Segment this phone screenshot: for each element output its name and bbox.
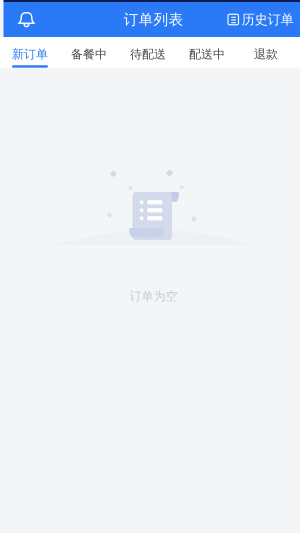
staticText: 备餐中 (71, 47, 107, 62)
button[interactable]: 备餐中 (71, 37, 107, 68)
staticText: 退款 (254, 47, 278, 62)
staticText: 订单为空 (129, 289, 177, 304)
staticText: 历史订单 (241, 11, 293, 28)
button[interactable]: 新订单 (12, 37, 48, 68)
button[interactable]: 历史订单 (222, 2, 300, 36)
button[interactable]: 待配送 (130, 37, 166, 68)
staticText: 订单列表 (123, 10, 183, 28)
staticText: 配送中 (189, 47, 225, 62)
staticText: 新订单 (12, 47, 48, 62)
button[interactable]: 配送中 (189, 37, 225, 68)
button[interactable]: Notifications (9, 2, 43, 36)
button[interactable]: 退款 (248, 37, 284, 68)
staticText: 待配送 (130, 47, 166, 62)
